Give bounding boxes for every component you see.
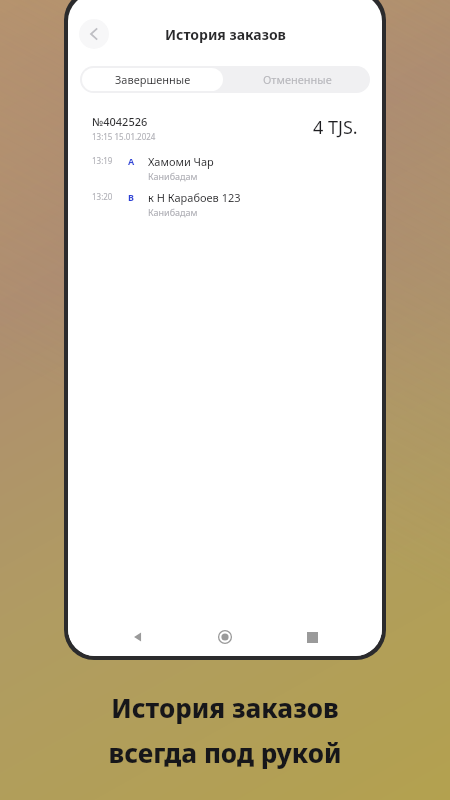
staticText: всегда под рукой	[108, 735, 342, 770]
staticText: Отмененные	[263, 72, 332, 87]
staticText: 13:15 15.01.2024	[92, 131, 156, 142]
button[interactable]: Назад	[79, 19, 109, 49]
button[interactable]: №4042526	[80, 104, 370, 229]
staticText: A	[128, 155, 142, 167]
staticText: B	[128, 191, 142, 203]
staticText: 13:19	[92, 155, 120, 166]
staticText: к Н Карабоев 123	[148, 190, 241, 205]
button[interactable]: Домой	[208, 620, 242, 654]
button[interactable]: Завершенные	[82, 68, 223, 91]
staticText: История заказов	[111, 690, 339, 725]
staticText: 4 TJS.	[313, 115, 358, 140]
staticText: №4042526	[92, 114, 148, 129]
button[interactable]: Отмененные	[225, 66, 370, 93]
staticText: Хамоми Чар	[148, 154, 214, 169]
staticText: 13:20	[92, 191, 120, 202]
staticText: Завершенные	[115, 72, 191, 87]
staticText: История заказов	[165, 25, 286, 44]
staticText: Канибадам	[148, 206, 198, 218]
button[interactable]: Недавние	[295, 620, 329, 654]
staticText: Канибадам	[148, 170, 198, 182]
button[interactable]: Назад	[121, 620, 155, 654]
